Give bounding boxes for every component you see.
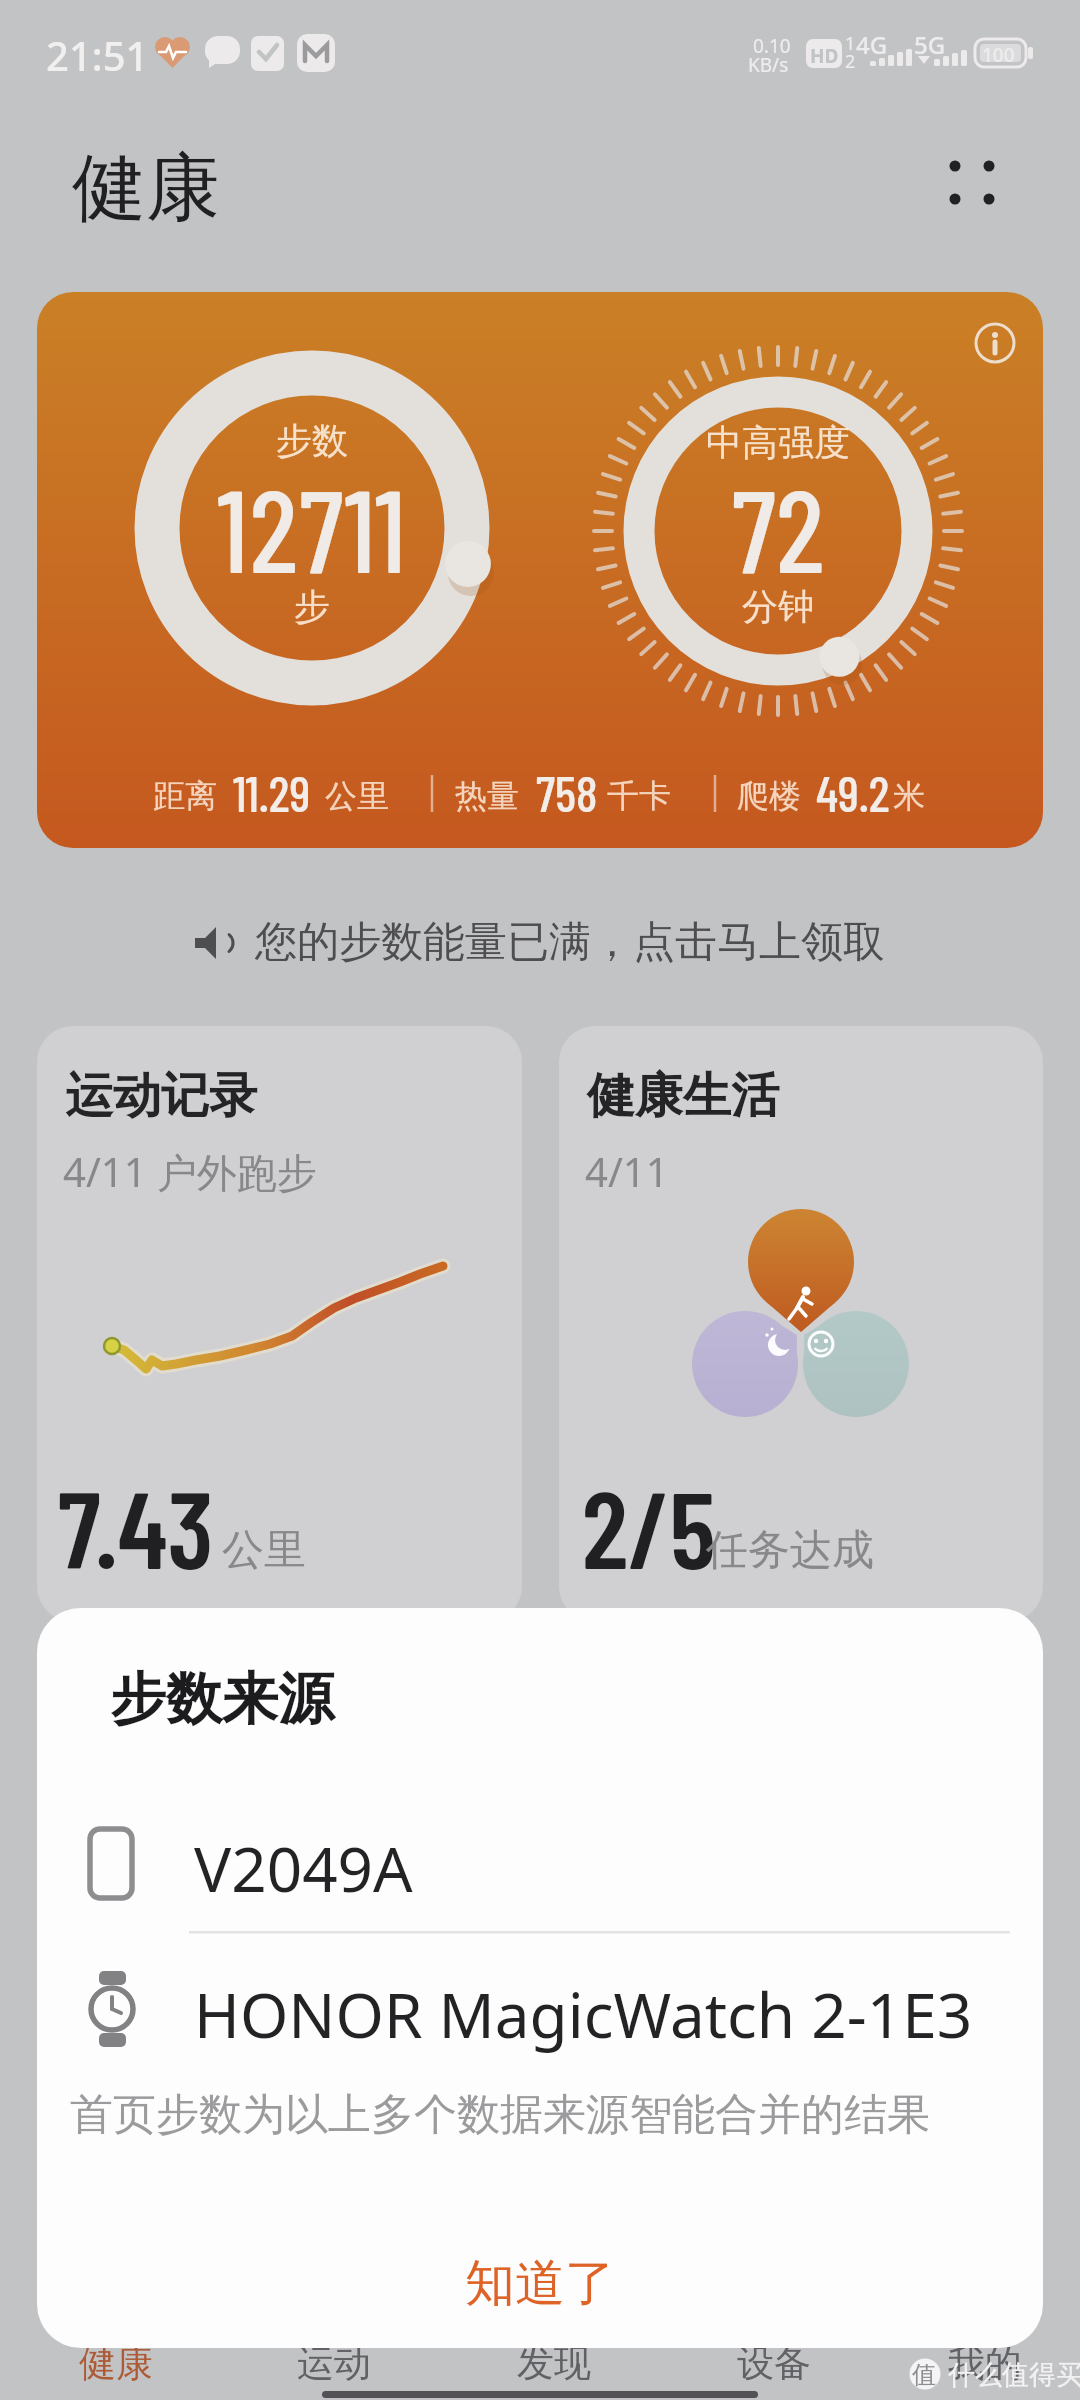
staticText: 值 (912, 2360, 936, 2390)
staticText: 12711 (162, 457, 462, 596)
staticText: 爬楼 (737, 776, 801, 816)
staticText: 运动 (297, 2340, 371, 2387)
staticText: 分钟 (628, 584, 928, 629)
button[interactable] (559, 1026, 1043, 1622)
button[interactable] (260, 2340, 460, 2398)
staticText: 2/5 (582, 1461, 716, 1591)
staticText: 健康 (72, 142, 220, 235)
button[interactable] (37, 1026, 522, 1622)
staticText: 中高强度 (628, 420, 928, 465)
button[interactable] (480, 2340, 680, 2398)
staticText: 758 (536, 762, 598, 822)
button[interactable] (60, 1810, 1010, 1920)
staticText: 4/11 户外跑步 (63, 1144, 317, 1199)
button[interactable] (60, 1955, 1010, 2065)
button[interactable] (40, 2340, 240, 2398)
staticText: 健康生活 (587, 1066, 779, 1126)
staticText: KB/s (748, 52, 789, 78)
staticText: 米 (893, 776, 925, 816)
staticText: 知道了 (465, 2252, 615, 2315)
staticText: 49.2 (816, 762, 890, 822)
staticText: 步数来源 (110, 1664, 334, 1735)
staticText: 7.43 (58, 1461, 214, 1591)
staticText: HONOR MagicWatch 2-1E3 (194, 1972, 973, 2056)
staticText: 步数 (162, 418, 462, 463)
staticText: 我的 (948, 2340, 1022, 2387)
staticText: 公里 (222, 1524, 306, 1577)
staticText: 健康 (79, 2340, 153, 2387)
button[interactable]: 知道了 (420, 2238, 660, 2328)
staticText: V2049A (194, 1826, 413, 1910)
staticText: 1 (845, 31, 856, 56)
staticText: 千卡 (607, 776, 671, 816)
staticText: 5G (914, 28, 946, 61)
button[interactable] (180, 910, 910, 980)
staticText: 4G (856, 28, 888, 61)
button[interactable] (700, 2340, 900, 2398)
staticText: 步 (162, 584, 462, 629)
staticText: HD (810, 43, 839, 69)
staticText: 4/11 (585, 1144, 669, 1198)
staticText: 发现 (517, 2340, 591, 2387)
staticText: 11.29 (233, 762, 311, 822)
button[interactable] (37, 292, 1043, 848)
staticText: 距离 (153, 776, 217, 816)
staticText: 运动记录 (65, 1066, 257, 1126)
staticText: 2 (845, 49, 856, 74)
staticText: 0.10 (753, 33, 791, 59)
staticText: 任务达成 (706, 1524, 874, 1577)
staticText: 72 (628, 457, 928, 596)
staticText: 21:51 (46, 28, 149, 82)
staticText: 首页步数为以上多个数据来源智能合并的结果 (70, 2088, 930, 2142)
staticText: 设备 (737, 2340, 811, 2387)
staticText: 100 (982, 42, 1015, 68)
staticText: 公里 (325, 776, 389, 816)
staticText: 您的步数能量已满，点击马上领取 (255, 916, 885, 969)
staticText: 什么值得买 (948, 2358, 1080, 2392)
staticText: 热量 (455, 776, 519, 816)
